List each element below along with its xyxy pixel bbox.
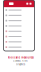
- staticText: Connect Alert: [13, 60, 28, 62]
- button[interactable]: App preview: [3, 0, 34, 51]
- staticText: Tools and Resources: [7, 56, 33, 59]
- staticText: Graphics: [16, 63, 25, 66]
